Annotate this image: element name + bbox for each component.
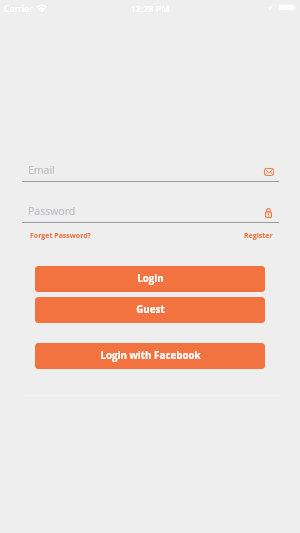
button[interactable]: Password [22, 199, 280, 223]
button[interactable]: Email [22, 158, 280, 182]
staticText: Register [244, 231, 273, 241]
staticText: Email [28, 163, 55, 177]
button[interactable]: Register [241, 230, 270, 243]
staticText: Login [137, 272, 164, 285]
button[interactable]: Forget Password? [27, 230, 88, 243]
staticText: Carrier [4, 2, 34, 14]
staticText: Login with Facebook [100, 349, 201, 362]
staticText: Guest [136, 303, 165, 316]
other: Password [265, 208, 272, 218]
button[interactable]: Guest [35, 297, 265, 323]
staticText: 12:28 PM [0, 2, 300, 14]
button[interactable]: Login with Facebook [35, 343, 265, 369]
staticText: Password [28, 204, 76, 218]
staticText: Forget Password? [30, 231, 91, 241]
other: Email [264, 168, 274, 176]
button[interactable]: Login [35, 266, 265, 292]
